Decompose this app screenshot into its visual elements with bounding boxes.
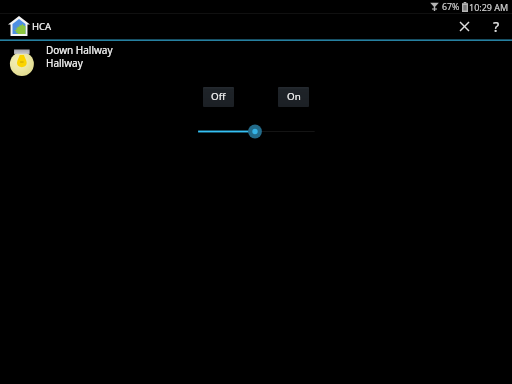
staticText: HCA: [32, 20, 52, 33]
staticText: Off: [211, 90, 226, 103]
staticText: Hallway: [46, 56, 83, 70]
button[interactable]: Help: [478, 13, 512, 39]
button[interactable]: Brightness: [190, 120, 324, 143]
staticText: On: [287, 90, 301, 103]
staticText: 10:29 AM: [469, 1, 509, 13]
button[interactable]: Off: [203, 87, 234, 107]
button[interactable]: Down Hallway: [0, 42, 512, 76]
button[interactable]: Close: [446, 13, 482, 39]
staticText: ?: [493, 17, 500, 36]
button[interactable]: On: [278, 87, 309, 107]
staticText: Down Hallway: [46, 43, 113, 57]
staticText: 67%: [442, 1, 460, 13]
